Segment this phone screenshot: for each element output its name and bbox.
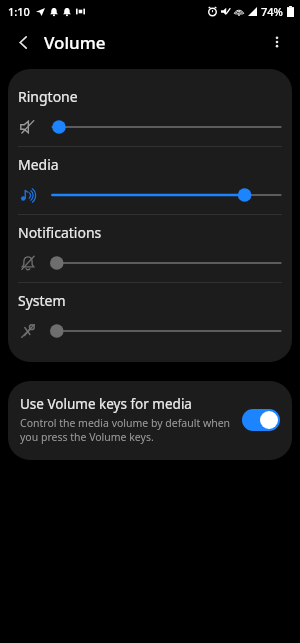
button[interactable] (50, 185, 282, 205)
button[interactable]: System (8, 283, 292, 350)
staticText: Volume (44, 31, 106, 54)
staticText: 74% (261, 4, 283, 19)
staticText: Media (18, 155, 59, 174)
staticText: Ringtone (18, 87, 78, 106)
button[interactable]: Use Volume keys for media (8, 381, 292, 460)
staticText: System (18, 291, 66, 310)
staticText: Use Volume keys for media (20, 395, 192, 413)
staticText: 1:10 (8, 4, 30, 19)
staticText: Notifications (18, 223, 102, 242)
button[interactable]: Notifications (8, 215, 292, 282)
button[interactable]: More options (260, 25, 294, 59)
staticText: Control the media volume by default when… (20, 416, 232, 444)
button[interactable]: Back (6, 25, 40, 59)
button[interactable] (50, 321, 282, 341)
button[interactable]: Ringtone (8, 79, 292, 146)
button[interactable] (50, 117, 282, 137)
button[interactable]: Use Volume keys for media toggle (242, 409, 280, 431)
button[interactable] (50, 253, 282, 273)
button[interactable]: Media (8, 147, 292, 214)
